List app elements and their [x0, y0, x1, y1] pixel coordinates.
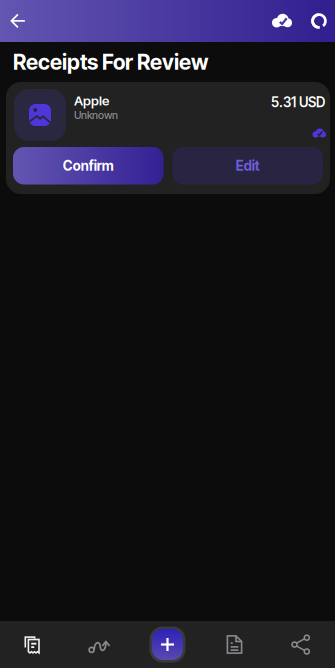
staticText: 5.31 USD: [271, 94, 325, 110]
button[interactable]: Add receipt: [134, 621, 201, 668]
button[interactable]: Edit: [172, 147, 323, 184]
button[interactable]: Receipts: [0, 621, 67, 668]
button[interactable]: Share: [268, 621, 335, 668]
staticText: Apple: [74, 92, 109, 109]
staticText: Confirm: [63, 157, 114, 174]
staticText: Edit: [236, 157, 260, 174]
button[interactable]: Back: [0, 0, 36, 42]
staticText: Receipts For Review: [13, 49, 208, 75]
staticText: Unknown: [74, 109, 118, 121]
button[interactable]: Reports: [201, 621, 268, 668]
button[interactable]: Trips: [67, 621, 134, 668]
button[interactable]: Sync status: [261, 0, 303, 42]
button[interactable]: Confirm: [13, 147, 163, 184]
button[interactable]: Refresh: [303, 0, 335, 42]
